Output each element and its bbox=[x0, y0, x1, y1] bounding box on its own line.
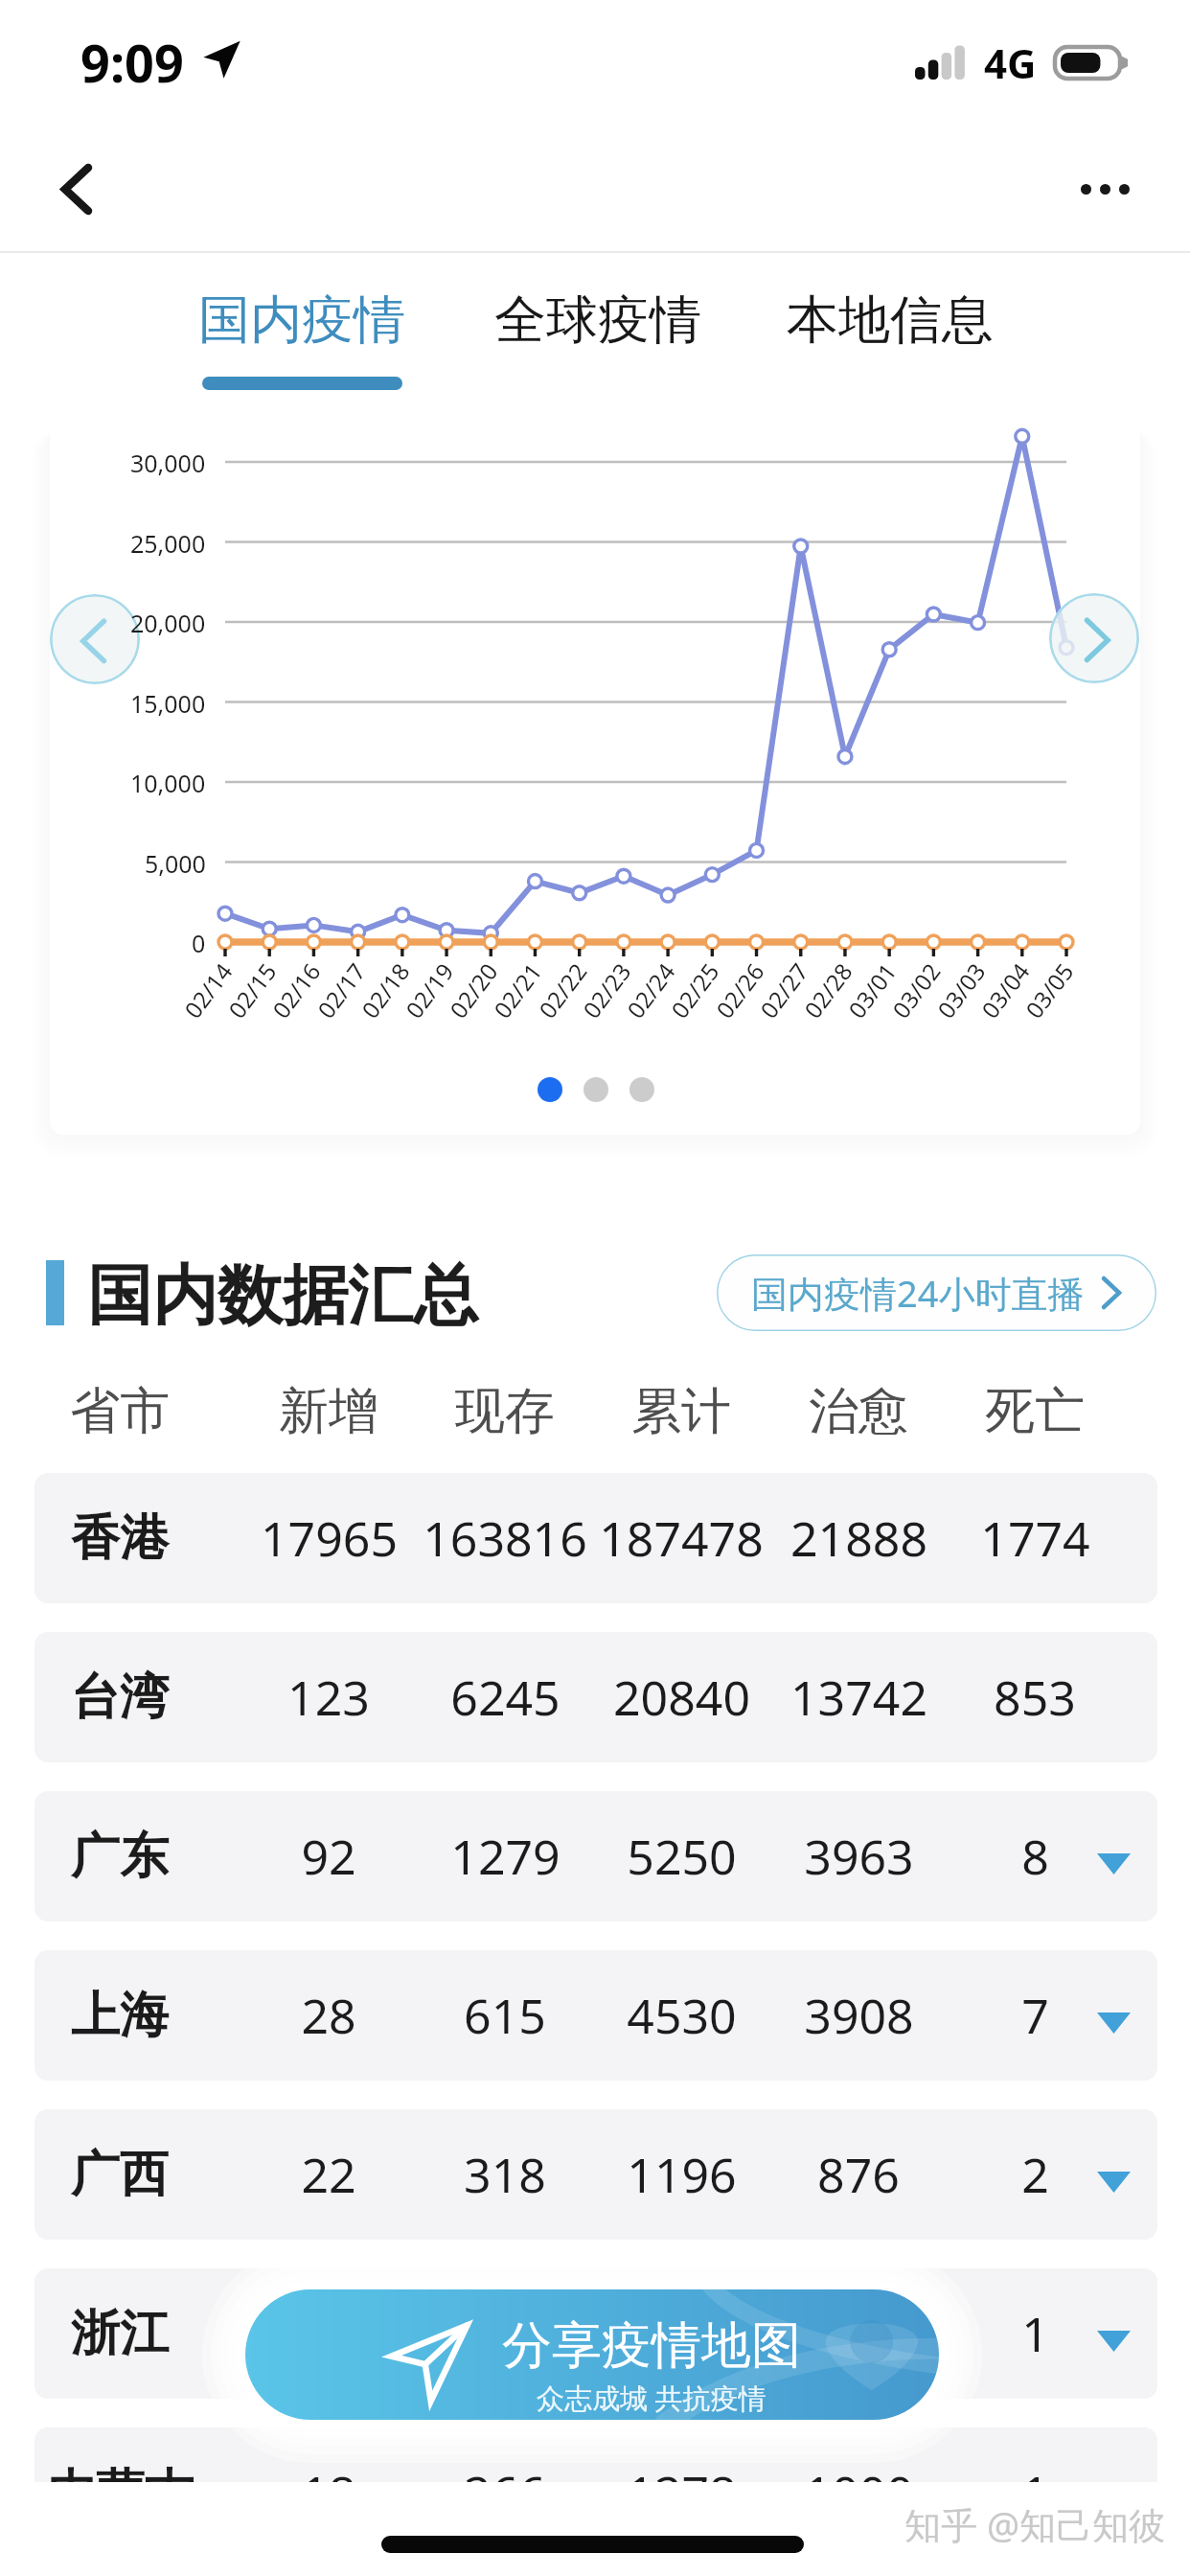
staticText: 内蒙古 bbox=[47, 2462, 194, 2523]
button[interactable]: 内蒙古 bbox=[34, 2427, 1157, 2558]
staticText: 18 bbox=[301, 2460, 356, 2525]
staticText: 知乎 @知己知彼 bbox=[904, 2499, 1166, 2549]
staticText: 4G bbox=[984, 35, 1037, 90]
button[interactable]: 广东 bbox=[34, 1791, 1157, 1921]
staticText: 02/14 bbox=[177, 956, 239, 1024]
button[interactable]: 广西 bbox=[34, 2109, 1157, 2240]
staticText: 02/19 bbox=[398, 956, 460, 1024]
staticText: 0 bbox=[192, 927, 206, 959]
staticText: 现存 bbox=[455, 1380, 555, 1443]
staticText: 1 bbox=[1021, 2301, 1049, 2366]
staticText: 266 bbox=[464, 2460, 546, 2525]
button[interactable]: 国内疫情 bbox=[175, 274, 423, 408]
staticText: 香港 bbox=[71, 1507, 169, 1569]
staticText: 国内疫情 bbox=[198, 287, 405, 353]
staticText: 03/02 bbox=[885, 956, 947, 1024]
staticText: 03/01 bbox=[841, 956, 903, 1024]
staticText: 25,000 bbox=[130, 527, 206, 560]
staticText: 02/21 bbox=[486, 956, 549, 1024]
staticText: 13742 bbox=[790, 1665, 927, 1730]
staticText: 163816 bbox=[423, 1506, 587, 1571]
button[interactable]: Page 1 bbox=[538, 1077, 562, 1102]
staticText: 30,000 bbox=[130, 447, 206, 479]
staticText: 治愈 bbox=[809, 1380, 908, 1443]
staticText: 03/03 bbox=[930, 956, 992, 1024]
staticText: 国内数据汇总 bbox=[87, 1255, 478, 1338]
button[interactable]: Previous bbox=[50, 594, 140, 684]
staticText: 1000 bbox=[804, 2460, 914, 2525]
button[interactable]: 国内疫情24小时直播 bbox=[717, 1254, 1156, 1331]
staticText: 累计 bbox=[631, 1380, 731, 1443]
staticText: 17965 bbox=[261, 1506, 398, 1571]
button[interactable]: 台湾 bbox=[34, 1632, 1157, 1762]
staticText: 02/27 bbox=[753, 956, 815, 1024]
staticText: 266 bbox=[464, 2301, 546, 2366]
button[interactable]: 浙江 bbox=[34, 2268, 1157, 2399]
staticText: 10,000 bbox=[130, 767, 206, 799]
staticText: 92 bbox=[301, 1824, 356, 1889]
staticText: 本地信息 bbox=[787, 287, 994, 353]
button[interactable]: Page 3 bbox=[629, 1077, 654, 1102]
button[interactable]: Back bbox=[33, 145, 121, 233]
button[interactable]: Next bbox=[1049, 593, 1139, 683]
staticText: 21888 bbox=[790, 1506, 927, 1571]
staticText: 03/04 bbox=[974, 956, 1036, 1024]
button[interactable]: 香港 bbox=[34, 1473, 1157, 1603]
staticText: 1378 bbox=[627, 2301, 737, 2366]
staticText: 3908 bbox=[804, 1983, 914, 2048]
staticText: 全球疫情 bbox=[494, 287, 701, 353]
staticText: 123 bbox=[287, 1665, 370, 1730]
staticText: 22 bbox=[301, 2142, 356, 2207]
staticText: 02/23 bbox=[575, 956, 638, 1024]
staticText: 1278 bbox=[627, 2460, 737, 2525]
staticText: 1774 bbox=[980, 1506, 1090, 1571]
staticText: 死亡 bbox=[985, 1380, 1085, 1443]
staticText: 02/16 bbox=[265, 956, 327, 1024]
staticText: 1196 bbox=[627, 2142, 737, 2207]
button[interactable]: 全球疫情 bbox=[471, 274, 719, 408]
staticText: 台湾 bbox=[71, 1667, 169, 1728]
staticText: 02/17 bbox=[310, 956, 372, 1024]
staticText: 4530 bbox=[627, 1983, 737, 2048]
button[interactable]: 上海 bbox=[34, 1950, 1157, 2081]
staticText: 1279 bbox=[450, 1824, 561, 1889]
staticText: 浙江 bbox=[71, 2303, 169, 2364]
button[interactable]: Page 2 bbox=[584, 1077, 608, 1102]
staticText: 187478 bbox=[599, 1506, 764, 1571]
staticText: 3963 bbox=[804, 1824, 914, 1889]
staticText: 广西 bbox=[71, 2144, 169, 2205]
button[interactable]: 分享疫情地图 bbox=[245, 2289, 939, 2420]
staticText: 国内疫情24小时直播 bbox=[751, 1268, 1085, 1318]
staticText: 02/24 bbox=[620, 956, 682, 1024]
staticText: 853 bbox=[994, 1665, 1076, 1730]
staticText: 876 bbox=[817, 2142, 900, 2207]
staticText: 5250 bbox=[627, 1824, 737, 1889]
staticText: 1099 bbox=[804, 2301, 914, 2366]
staticText: 02/20 bbox=[442, 956, 504, 1024]
button[interactable]: More options bbox=[1048, 145, 1161, 233]
staticText: 02/26 bbox=[709, 956, 771, 1024]
staticText: 02/15 bbox=[221, 956, 283, 1024]
staticText: 新增 bbox=[279, 1380, 378, 1443]
staticText: 众志成城 共抗疫情 bbox=[537, 2379, 767, 2417]
button[interactable]: 本地信息 bbox=[764, 274, 1011, 408]
staticText: 2 bbox=[1021, 2142, 1049, 2207]
staticText: 7 bbox=[1021, 1983, 1049, 2048]
staticText: 02/18 bbox=[354, 956, 416, 1024]
staticText: 28 bbox=[301, 1983, 356, 2048]
staticText: 5,000 bbox=[145, 847, 206, 880]
staticText: 615 bbox=[464, 1983, 546, 2048]
staticText: 1 bbox=[1021, 2460, 1049, 2525]
staticText: 20840 bbox=[613, 1665, 750, 1730]
staticText: 20,000 bbox=[130, 607, 206, 639]
staticText: 广东 bbox=[71, 1826, 169, 1887]
staticText: 02/28 bbox=[797, 956, 859, 1024]
staticText: 03/05 bbox=[1018, 956, 1080, 1024]
staticText: 02/22 bbox=[531, 956, 594, 1024]
staticText: 8 bbox=[1021, 1824, 1049, 1889]
staticText: 318 bbox=[464, 2142, 546, 2207]
staticText: 02/25 bbox=[664, 956, 726, 1024]
staticText: 分享疫情地图 bbox=[502, 2314, 801, 2378]
staticText: 9:09 bbox=[80, 27, 184, 98]
